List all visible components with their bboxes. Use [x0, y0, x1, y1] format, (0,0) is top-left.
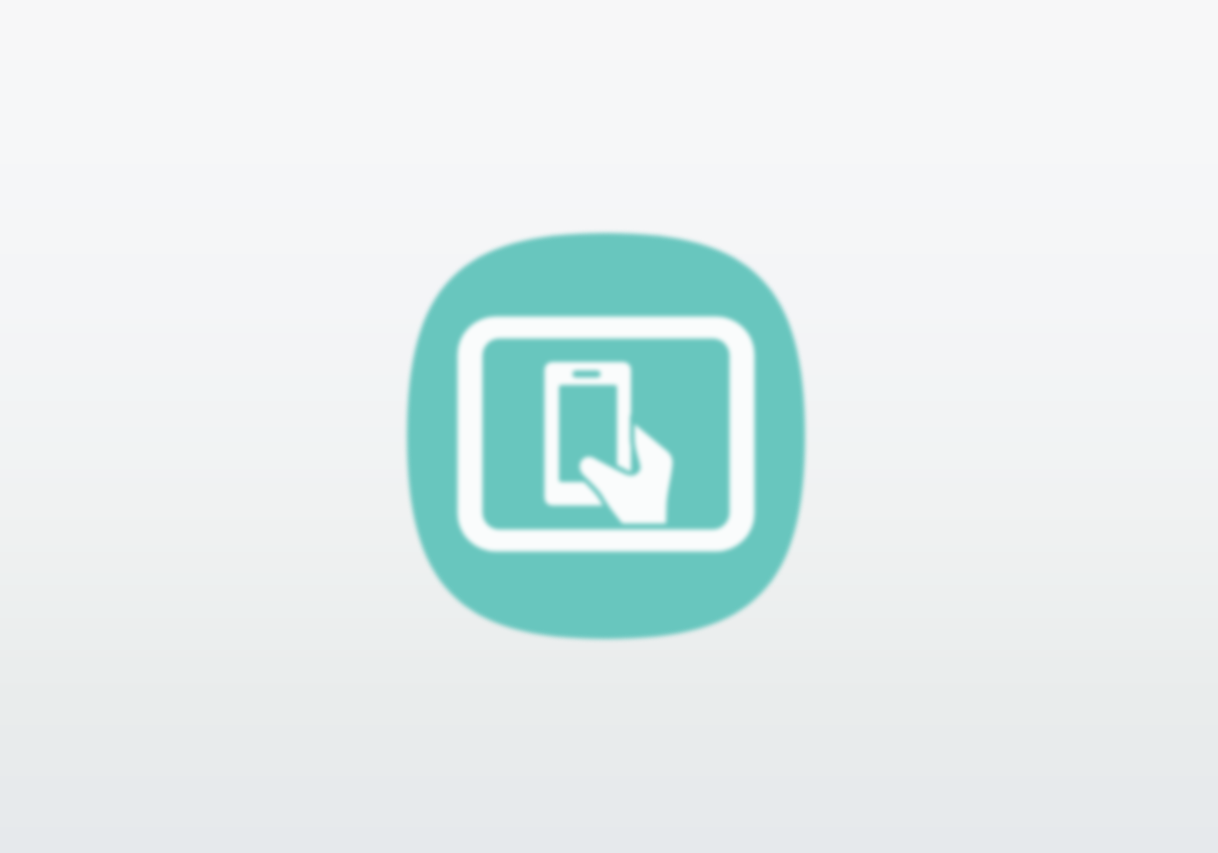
button[interactable]: Touch-screen app icon: [0, 0, 1218, 853]
